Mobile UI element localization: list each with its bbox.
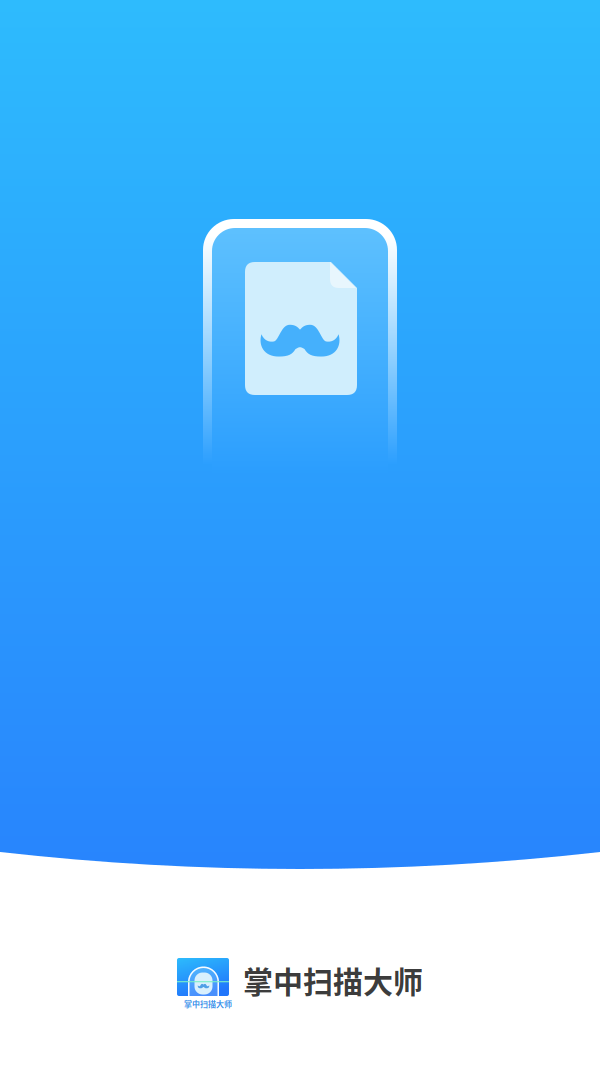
button[interactable]: 掌中扫描大师 [177,958,427,1008]
staticText: 掌中扫描大师 [243,958,423,1002]
staticText: 掌中扫描大师 [184,998,232,1010]
